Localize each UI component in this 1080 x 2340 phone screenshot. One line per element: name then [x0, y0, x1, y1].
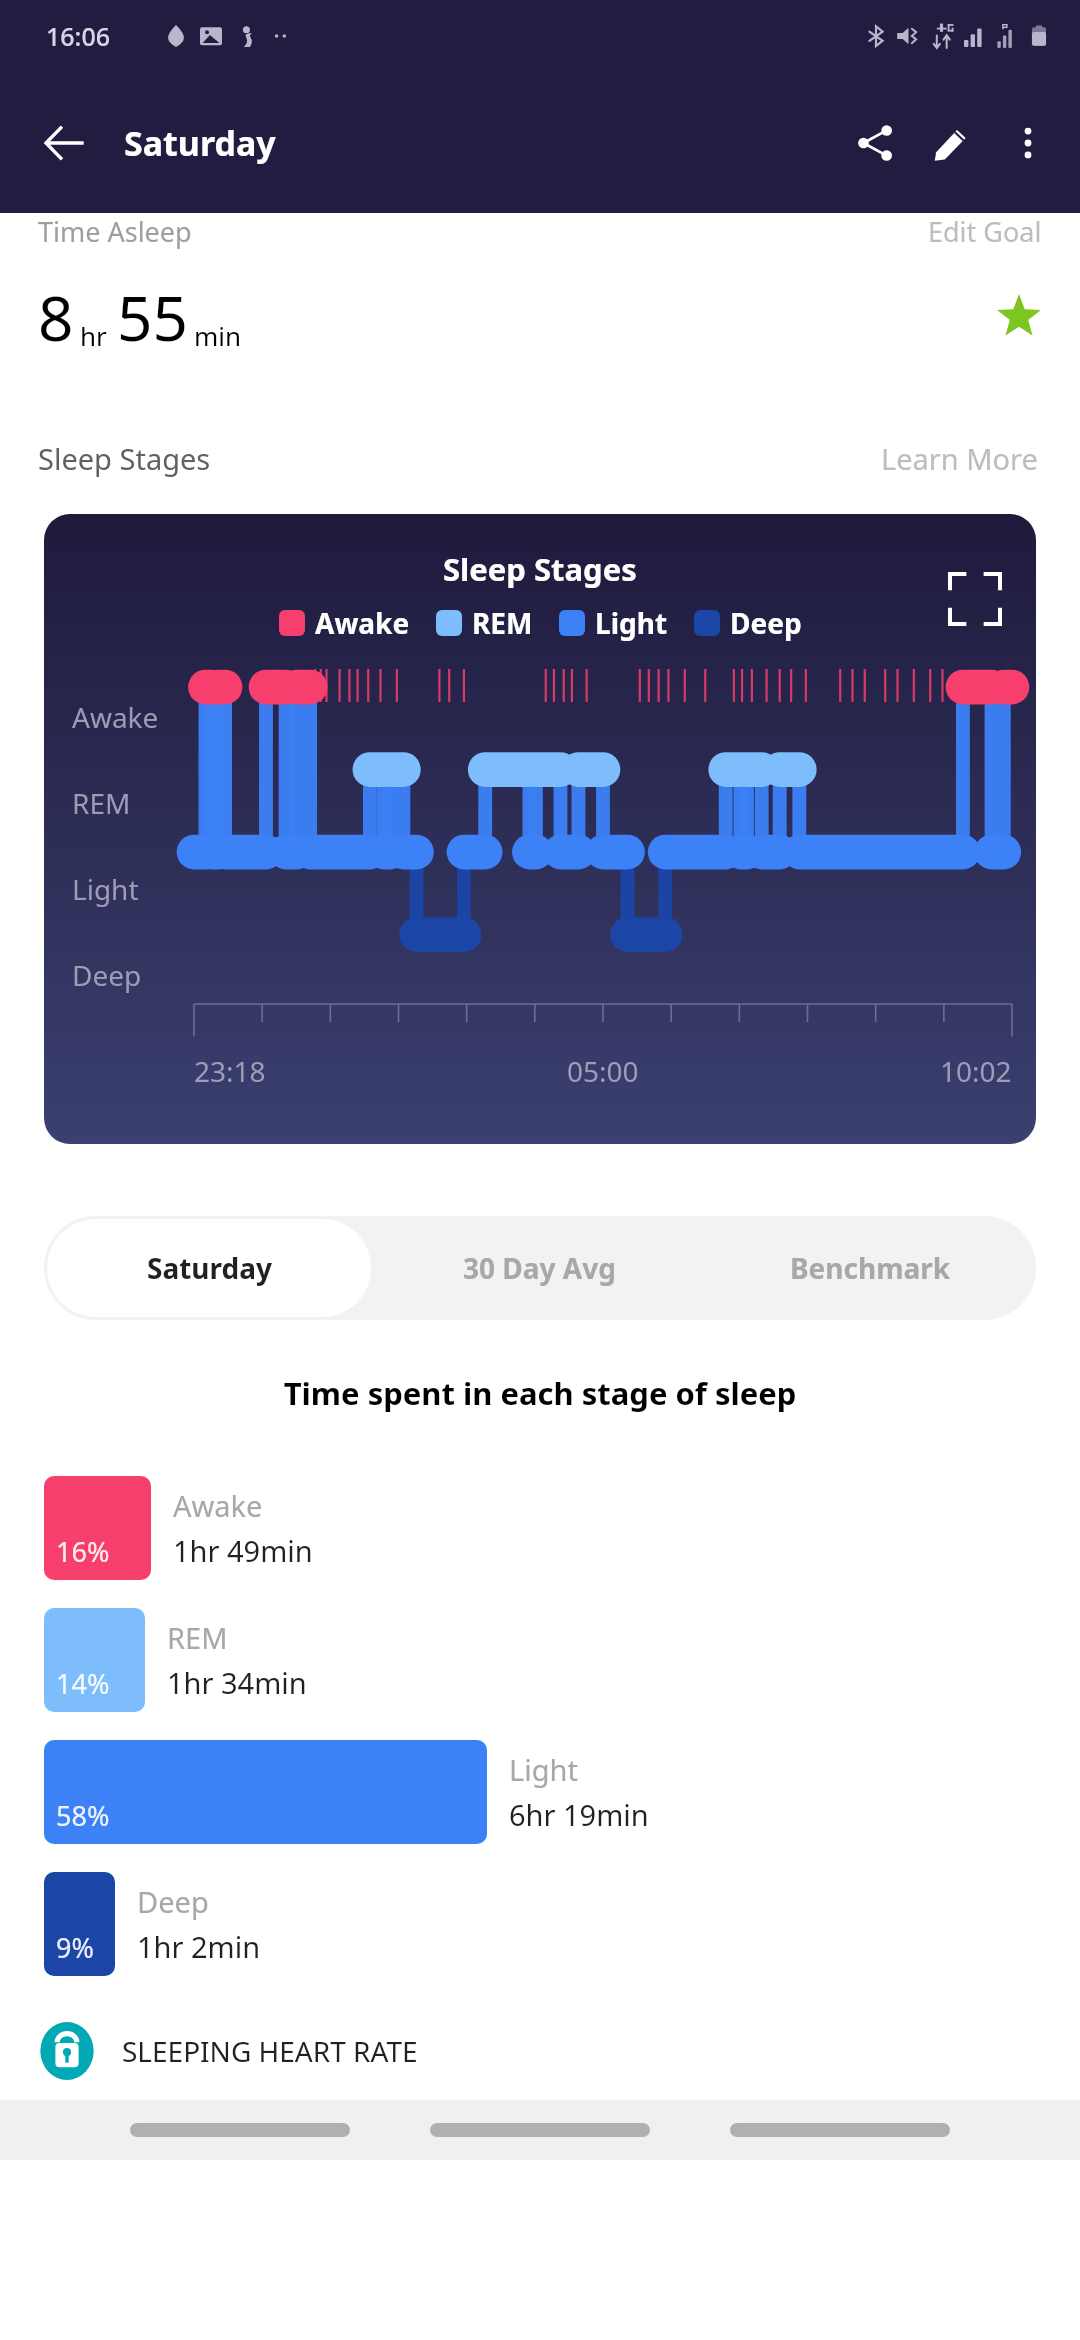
staticText: min — [194, 318, 242, 353]
staticText: Saturday — [124, 120, 276, 166]
button[interactable]: Saturday — [47, 1219, 371, 1317]
staticText: 8 — [38, 275, 74, 359]
staticText: Awake — [72, 698, 159, 736]
staticText: 30 Day Avg — [463, 1249, 616, 1287]
staticText: SLEEPING HEART RATE — [122, 2032, 418, 2070]
staticText: 1hr 49min — [173, 1531, 313, 1570]
button[interactable]: Expand chart — [948, 572, 1002, 626]
staticText: 16:06 — [46, 19, 111, 53]
staticText: 05:00 — [567, 1052, 639, 1090]
staticText: 23:18 — [194, 1052, 266, 1090]
staticText: 55 — [117, 275, 188, 359]
button[interactable]: Learn More — [877, 435, 1042, 482]
button[interactable]: Share — [838, 105, 914, 181]
staticText: 6hr 19min — [509, 1795, 649, 1834]
staticText: Deep — [730, 604, 802, 642]
staticText: Light — [72, 870, 139, 908]
staticText: hr — [80, 318, 107, 353]
staticText: Learn More — [881, 439, 1038, 478]
staticText: Time Asleep — [38, 213, 192, 249]
staticText: 1hr 2min — [137, 1927, 261, 1966]
staticText: Sleep Stages — [38, 439, 211, 478]
staticText: 14% — [56, 1665, 110, 1702]
staticText: Deep — [137, 1882, 209, 1921]
staticText: REM — [167, 1618, 228, 1657]
button[interactable]: SLEEPING HEART RATE — [0, 2022, 1080, 2080]
button[interactable]: Back — [26, 105, 102, 181]
staticText: Deep — [72, 956, 142, 994]
staticText: Benchmark — [790, 1249, 951, 1287]
staticText: REM — [472, 604, 533, 642]
staticText: REM — [72, 784, 131, 822]
button[interactable]: Benchmark — [705, 1216, 1036, 1320]
button[interactable]: 14% — [44, 1608, 1036, 1712]
staticText: Edit Goal — [928, 213, 1042, 249]
button[interactable]: 9% — [44, 1872, 1036, 1976]
staticText: 16% — [56, 1533, 110, 1570]
button[interactable]: 30 Day Avg — [374, 1216, 705, 1320]
staticText: Light — [509, 1750, 578, 1789]
staticText: Light — [595, 604, 668, 642]
staticText: 1hr 34min — [167, 1663, 307, 1702]
button[interactable]: Edit — [914, 105, 990, 181]
button[interactable]: More options — [990, 105, 1066, 181]
button[interactable]: 58% — [44, 1740, 1036, 1844]
staticText: 9% — [56, 1929, 94, 1966]
staticText: Time spent in each stage of sleep — [0, 1372, 1080, 1414]
staticText: Saturday — [147, 1249, 272, 1287]
staticText: 58% — [56, 1797, 110, 1834]
staticText: Awake — [315, 604, 410, 642]
staticText: 10:02 — [940, 1052, 1012, 1090]
button[interactable]: 16% — [44, 1476, 1036, 1580]
staticText: Sleep Stages — [443, 548, 637, 590]
staticText: Awake — [173, 1486, 263, 1525]
button[interactable]: Sleep Stages — [44, 514, 1036, 1144]
